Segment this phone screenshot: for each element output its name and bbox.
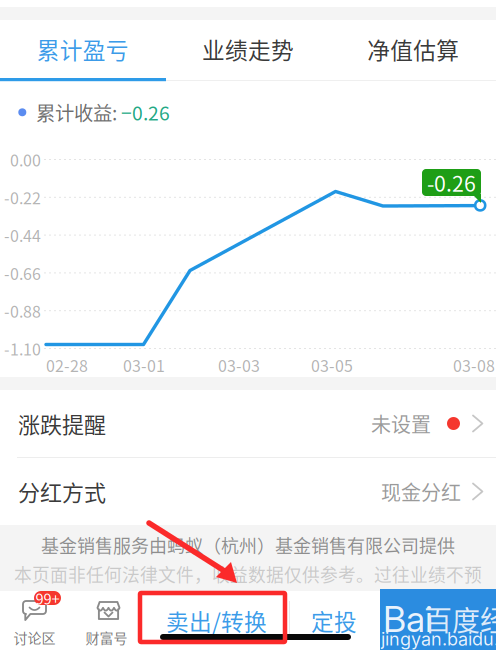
- staticText: 累计盈亏: [37, 33, 129, 65]
- staticText: 财富号: [85, 627, 127, 648]
- staticText: 03-03: [218, 353, 260, 377]
- button[interactable]: 财富号: [72, 591, 144, 650]
- staticText: 分红方式: [18, 476, 106, 507]
- button[interactable]: 业绩走势: [165, 20, 331, 78]
- button[interactable]: 定投: [289, 591, 379, 650]
- staticText: 涨跌提醒: [18, 408, 106, 439]
- staticText: Bai: [383, 597, 433, 641]
- button[interactable]: 99+: [0, 591, 72, 650]
- staticText: 定投: [311, 604, 357, 637]
- staticText: −0.26: [121, 98, 170, 126]
- staticText: 净值估算: [367, 33, 459, 65]
- button[interactable]: 净值估算: [331, 20, 496, 78]
- staticText: 百度经验: [424, 599, 496, 639]
- staticText: -1.10: [4, 337, 41, 360]
- staticText: -0.66: [4, 261, 41, 284]
- staticText: -0.88: [4, 299, 41, 322]
- staticText: 业绩走势: [202, 33, 294, 65]
- staticText: jingyan.baidu.com: [381, 628, 496, 650]
- staticText: 未设置: [371, 409, 431, 438]
- staticText: -0.26: [427, 167, 476, 198]
- button[interactable]: 卖出/转换: [144, 591, 289, 650]
- staticText: 0.00: [10, 148, 41, 171]
- staticText: 卖出/转换: [166, 604, 267, 637]
- staticText: 03-05: [311, 353, 353, 377]
- staticText: -0.44: [4, 223, 41, 247]
- button[interactable]: 涨跌提醒: [0, 390, 496, 457]
- button[interactable]: 累计盈亏: [0, 20, 165, 78]
- staticText: 03-08: [453, 353, 495, 377]
- staticText: 99+: [35, 587, 59, 609]
- staticText: 基金销售服务由蚂蚁（杭州）基金销售有限公司提供: [41, 532, 455, 558]
- button[interactable]: 分红方式: [0, 458, 496, 525]
- staticText: 02-28: [46, 353, 88, 377]
- staticText: 累计收益:: [36, 98, 121, 126]
- staticText: 03-01: [123, 353, 165, 377]
- staticText: 现金分红: [381, 477, 461, 506]
- staticText: 本页面非任何法律文件，收益数据仅供参考。过往业绩不预: [14, 561, 482, 587]
- staticText: -0.22: [4, 186, 41, 209]
- staticText: 讨论区: [13, 627, 55, 648]
